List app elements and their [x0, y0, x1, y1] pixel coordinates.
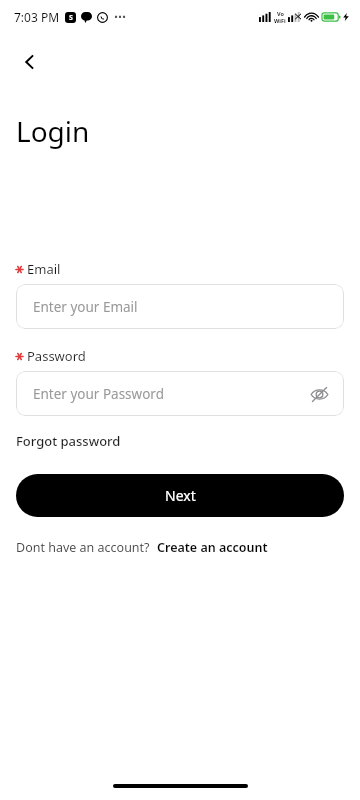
button[interactable]: Enter your Password	[16, 371, 344, 416]
button[interactable]: Forgot password	[16, 432, 121, 450]
button[interactable]: Show password	[304, 379, 334, 409]
staticText: WiFi	[274, 17, 286, 24]
staticText: 7:03 PM	[14, 9, 60, 25]
staticText: Enter your Email	[33, 298, 138, 316]
staticText: S	[69, 13, 73, 23]
staticText: Enter your Password	[33, 385, 164, 403]
staticText: Login	[16, 112, 90, 150]
staticText: Next	[165, 486, 196, 505]
button[interactable]: Next	[16, 474, 344, 517]
staticText: Vo	[277, 10, 284, 17]
button[interactable]: Create an account	[157, 539, 268, 556]
staticText: Password	[27, 347, 86, 365]
button[interactable]: Back	[10, 42, 50, 82]
staticText: Forgot password	[16, 432, 121, 450]
staticText: ⋯	[114, 10, 126, 24]
staticText: Create an account	[157, 539, 268, 556]
button[interactable]: Enter your Email	[16, 284, 344, 329]
staticText: Email	[27, 260, 61, 278]
staticText: Dont have an account?	[16, 539, 150, 556]
